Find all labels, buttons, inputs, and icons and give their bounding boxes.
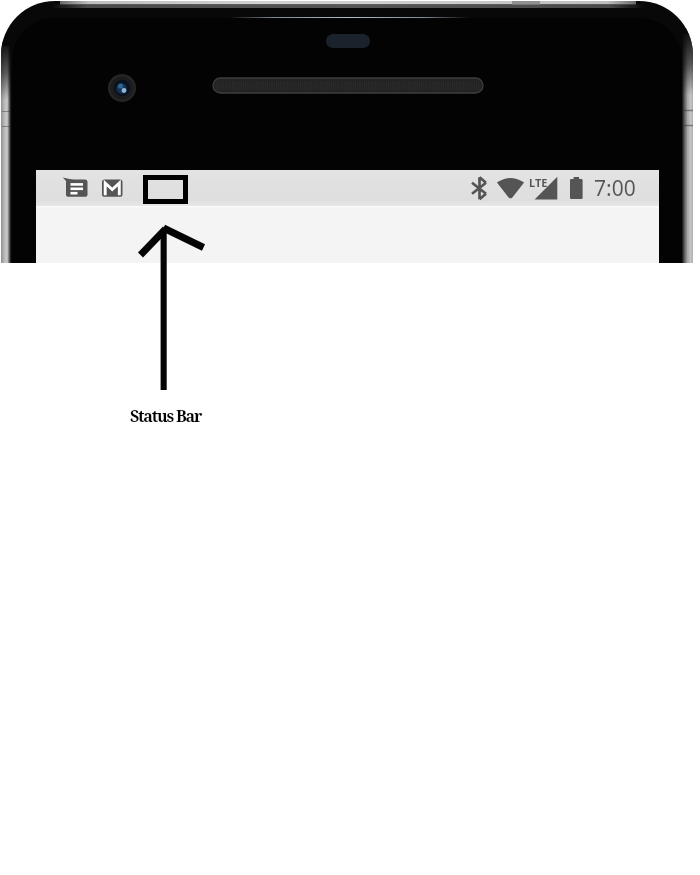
staticText: LTE [529,175,548,190]
staticText: Status Bar [130,405,202,427]
button[interactable]: Messages notification [61,170,95,206]
button[interactable]: Wi-Fi signal [492,170,526,206]
button[interactable]: Battery full [566,170,588,206]
button[interactable]: 7:00 [590,170,648,206]
staticText: 7:00 [594,174,636,203]
button[interactable]: Gmail notification [98,170,128,206]
button[interactable]: Status bar call-out highlight [143,175,189,205]
button[interactable]: LTE [526,170,560,206]
button[interactable]: Bluetooth on [466,170,492,206]
